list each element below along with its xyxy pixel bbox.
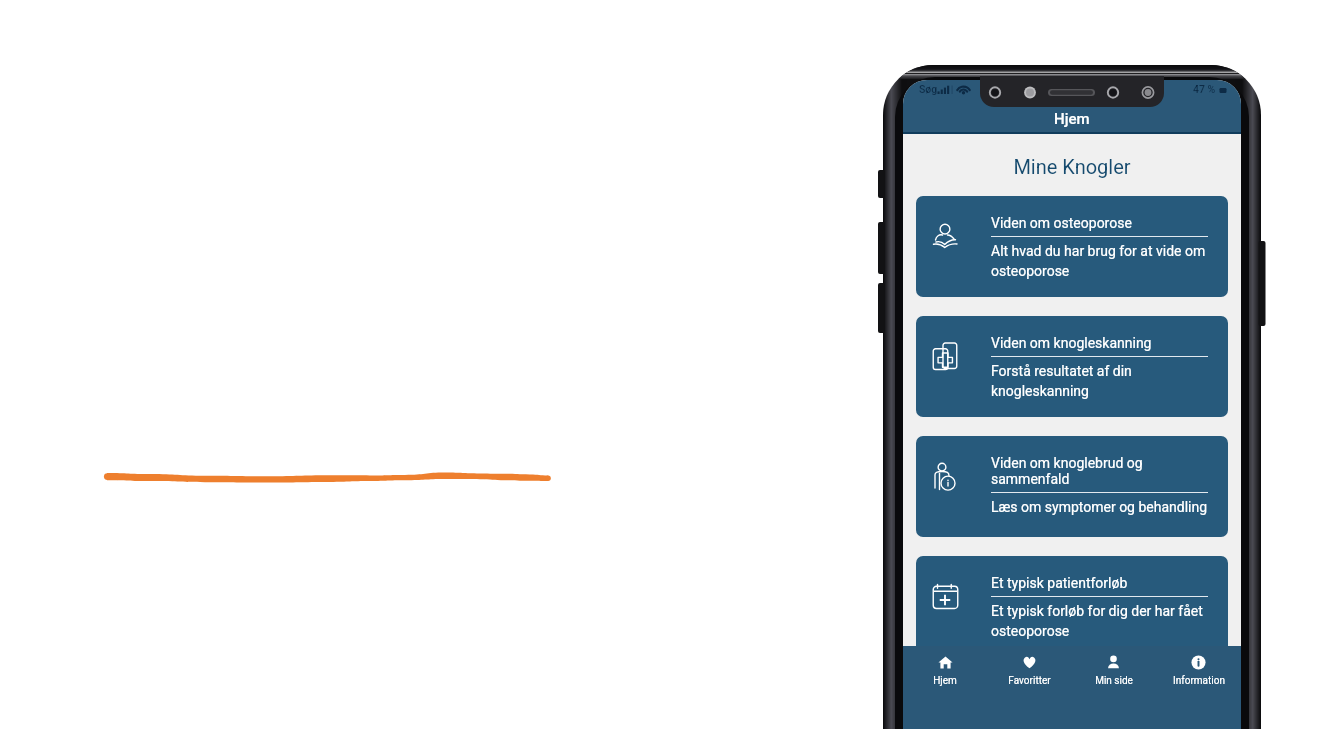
staticText: Viden om osteoporose <box>991 215 1132 231</box>
button[interactable]: Viden om knogleskanning <box>916 316 1228 417</box>
staticText: Hjem <box>1054 110 1090 128</box>
staticText: Hjem <box>933 675 957 687</box>
staticText: Søg <box>919 83 938 95</box>
staticText: Viden om knoglebrud og sammenfald <box>991 455 1208 487</box>
staticText: Et typisk forløb for dig der har fået os… <box>991 603 1208 640</box>
button[interactable]: Information <box>1156 646 1241 687</box>
staticText: Information <box>1173 675 1225 687</box>
button[interactable]: Et typisk patientforløb <box>916 556 1228 657</box>
staticText: Et typisk patientforløb <box>991 575 1128 591</box>
staticText: Viden om knogleskanning <box>991 335 1152 351</box>
staticText: Læs om symptomer og behandling <box>991 499 1208 515</box>
button[interactable]: Viden om knoglebrud og sammenfald <box>916 436 1228 537</box>
staticText: Mine Knogler <box>1013 155 1131 178</box>
staticText: Forstå resultatet af din knogleskanning <box>991 363 1208 400</box>
button[interactable]: Hjem <box>903 646 987 687</box>
staticText: Alt hvad du har brug for at vide om oste… <box>991 243 1208 280</box>
button[interactable]: Favoritter <box>987 646 1071 687</box>
button[interactable]: Viden om osteoporose <box>916 196 1228 297</box>
staticText: 47 % <box>1193 83 1216 95</box>
staticText: Favoritter <box>1008 675 1051 687</box>
staticText: Min side <box>1095 675 1133 687</box>
button[interactable]: Min side <box>1071 646 1156 687</box>
